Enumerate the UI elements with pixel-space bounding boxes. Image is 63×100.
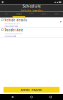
staticText: Choose a handover slot [4, 33, 21, 35]
button[interactable]: VEHICLE [13, 12, 25, 16]
staticText: Transfer date [4, 28, 23, 32]
staticText: SUBMIT REQUEST [20, 88, 42, 91]
button[interactable]: ROUTE [38, 12, 50, 16]
button[interactable]: Recents [44, 94, 58, 99]
staticText: NOTES [54, 13, 59, 15]
staticText: INFO [5, 13, 8, 15]
button[interactable]: INFO [0, 12, 13, 16]
button[interactable]: Home [24, 94, 38, 99]
staticText: Vehicle details [4, 18, 26, 22]
button[interactable]: NOTES [50, 12, 63, 16]
button[interactable]: Back [5, 94, 19, 99]
staticText: Make, model and colour [4, 23, 20, 25]
staticText: Vehicle transfer [20, 9, 42, 13]
button[interactable]: SUBMIT REQUEST [3, 87, 59, 93]
staticText: DRIVER [29, 13, 34, 15]
staticText: VEHICLE [16, 13, 22, 15]
staticText: Schedule [22, 3, 40, 9]
staticText: Edit vehicle information [4, 25, 18, 27]
staticText: Select date and time [4, 35, 16, 37]
button[interactable]: DRIVER [25, 12, 38, 16]
staticText: ROUTE [42, 13, 47, 15]
